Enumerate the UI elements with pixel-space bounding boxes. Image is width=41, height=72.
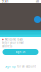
button[interactable]: Sign up (5, 65, 36, 68)
staticText: ıll (36, 0, 39, 3)
staticText: Sign up (5, 65, 16, 68)
staticText: Welcome back (5, 38, 23, 41)
staticText: Sign In (15, 50, 25, 54)
staticText: for an account (17, 65, 36, 68)
button[interactable]: Sign In (2, 49, 38, 55)
staticText: Enter your email address (2, 41, 24, 48)
staticText: 9:41 (2, 0, 9, 3)
